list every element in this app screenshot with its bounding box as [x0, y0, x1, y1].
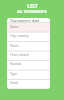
staticText: Rounds [10, 62, 22, 66]
staticText: Time control [10, 53, 29, 57]
button[interactable]: City, country [7, 32, 50, 41]
staticText: Name [10, 25, 19, 29]
button[interactable]: Email [7, 79, 50, 88]
staticText: City, country [10, 34, 29, 38]
button[interactable]: Dates [7, 42, 50, 51]
button[interactable]: Rounds [7, 60, 50, 69]
staticText: ALL TOURNAMENTS [17, 10, 47, 14]
staticText: Email [10, 81, 19, 85]
staticText: LIST [27, 3, 38, 10]
staticText: Tournament data [10, 18, 40, 23]
staticText: Dates [10, 44, 19, 48]
button[interactable]: Type [7, 70, 50, 79]
button[interactable]: Time control [7, 51, 50, 60]
button[interactable]: Name [7, 23, 50, 32]
staticText: Type [10, 72, 18, 76]
